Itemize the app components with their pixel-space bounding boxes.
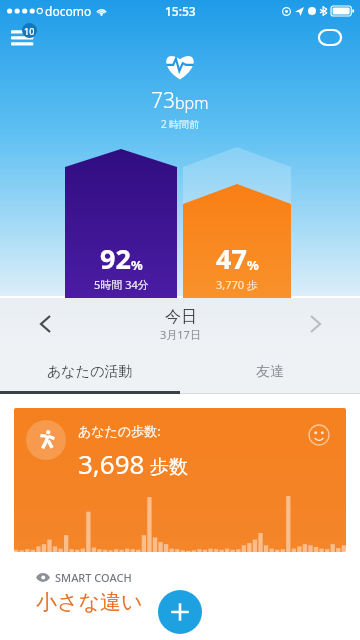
- button[interactable]: Previous day: [0, 298, 90, 350]
- staticText: %: [247, 256, 259, 274]
- button[interactable]: 友達: [180, 350, 360, 394]
- button[interactable]: Add activity: [158, 590, 202, 634]
- staticText: 3月17日: [160, 327, 201, 342]
- staticText: 小さな違い: [36, 589, 143, 615]
- button[interactable]: 今日: [160, 307, 201, 342]
- staticText: 15:53: [165, 3, 196, 19]
- staticText: 友達: [256, 363, 284, 381]
- staticText: 2 時間前: [161, 117, 200, 131]
- staticText: 5時間 34分: [94, 277, 149, 292]
- button[interactable]: Mood: [306, 422, 332, 448]
- button[interactable]: SMART COACH: [14, 560, 346, 640]
- staticText: SMART COACH: [55, 570, 132, 585]
- button[interactable]: Next day: [270, 298, 360, 350]
- staticText: 3,698: [78, 446, 145, 481]
- staticText: %: [131, 256, 143, 274]
- staticText: bpm: [175, 92, 209, 114]
- staticText: 歩数: [145, 453, 188, 479]
- staticText: 今日: [165, 307, 197, 327]
- staticText: 10: [24, 25, 35, 37]
- staticText: 3,770 歩: [216, 277, 258, 292]
- button[interactable]: Menu, 10 notifications: [10, 22, 44, 52]
- staticText: docomo: [45, 3, 92, 19]
- staticText: 47: [216, 240, 247, 277]
- staticText: 92: [100, 240, 131, 277]
- button[interactable]: あなたの活動: [0, 350, 180, 394]
- staticText: あなたの歩数:: [78, 422, 161, 440]
- button[interactable]: Device: [314, 22, 346, 52]
- staticText: 73: [151, 86, 175, 115]
- button[interactable]: あなたの歩数:: [14, 408, 346, 552]
- staticText: あなたの活動: [47, 363, 133, 381]
